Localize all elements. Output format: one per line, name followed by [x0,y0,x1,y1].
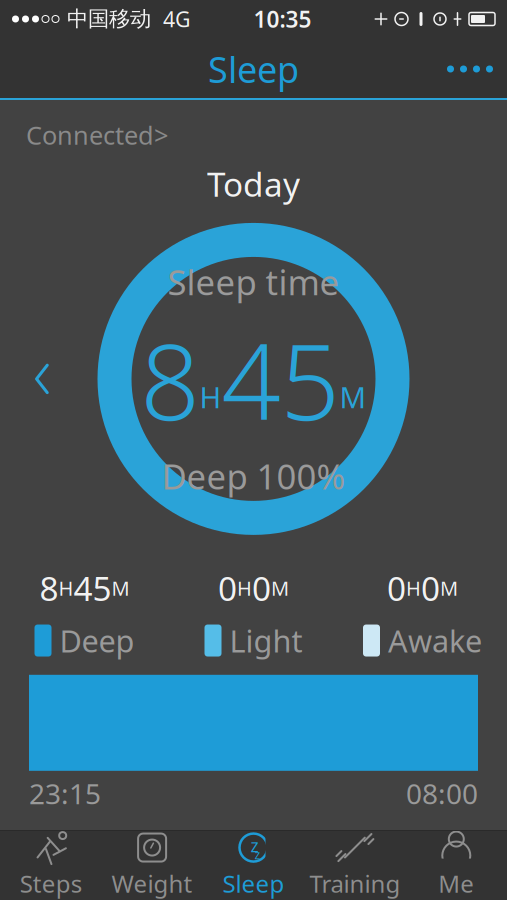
staticText: 10:35 [253,4,311,34]
staticText: 0 [421,566,440,610]
button[interactable]: Weight [101,825,203,900]
staticText: H [58,575,73,601]
staticText: M [440,575,458,601]
staticText: 8 [140,311,199,449]
staticText: Steps [20,868,82,899]
staticText: Sleep [208,45,299,93]
staticText: Awake [388,620,482,661]
staticText: 4G [163,5,191,33]
staticText: Training [309,868,400,899]
staticText: M [271,575,289,601]
staticText: 8 [39,566,58,610]
staticText: 23:15 [29,775,101,812]
staticText: Weight [112,868,193,899]
staticText: H [406,575,421,601]
button[interactable]: Previous day [22,351,62,407]
staticText: 45 [221,311,339,449]
staticText: z [250,834,258,857]
button[interactable]: More options [433,47,507,90]
staticText: z [254,847,260,862]
staticText: 中国移动 [67,6,151,32]
staticText: Deep 100% [161,453,345,499]
staticText: 0 [252,566,271,610]
button[interactable]: Steps [0,825,101,900]
staticText: M [339,377,366,416]
staticText: Deep [59,620,134,661]
staticText: 0 [387,566,406,610]
staticText: 0 [218,566,237,610]
button[interactable]: Training [304,825,406,900]
staticText: H [199,377,221,416]
staticText: H [237,575,252,601]
button[interactable]: Connected> [0,110,168,160]
staticText: Sleep [222,868,284,899]
staticText: M [111,575,129,601]
staticText: Me [438,868,474,899]
staticText: Light [229,620,302,661]
staticText: 08:00 [406,775,478,812]
staticText: Sleep time [167,259,339,305]
staticText: 45 [73,566,111,610]
staticText: Today [207,162,300,206]
staticText: Connected> [26,118,168,152]
button[interactable]: Me [406,825,507,900]
button[interactable]: z [203,825,304,900]
